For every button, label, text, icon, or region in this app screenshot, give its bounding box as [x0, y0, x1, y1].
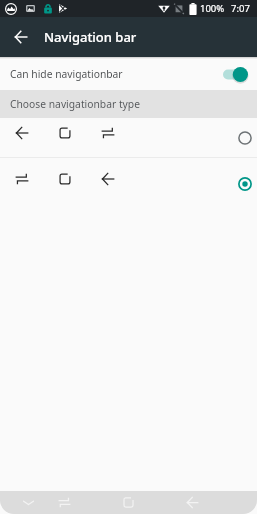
staticText: Can hide navigationbar — [10, 67, 123, 81]
staticText: Navigation bar — [44, 28, 137, 46]
button[interactable] — [0, 158, 257, 210]
button[interactable]: Back — [176, 491, 208, 514]
button[interactable]: Hide keyboard — [16, 491, 40, 514]
button[interactable]: Can hide navigationbar — [0, 57, 257, 90]
button[interactable]: Back — [0, 17, 40, 57]
staticText: 7:07 — [231, 2, 250, 15]
staticText: Choose navigationbar type — [10, 97, 140, 111]
staticText: 100% — [200, 2, 225, 15]
button[interactable] — [0, 118, 257, 157]
button[interactable]: Recents — [112, 491, 144, 514]
button[interactable]: Switch apps — [48, 491, 80, 514]
